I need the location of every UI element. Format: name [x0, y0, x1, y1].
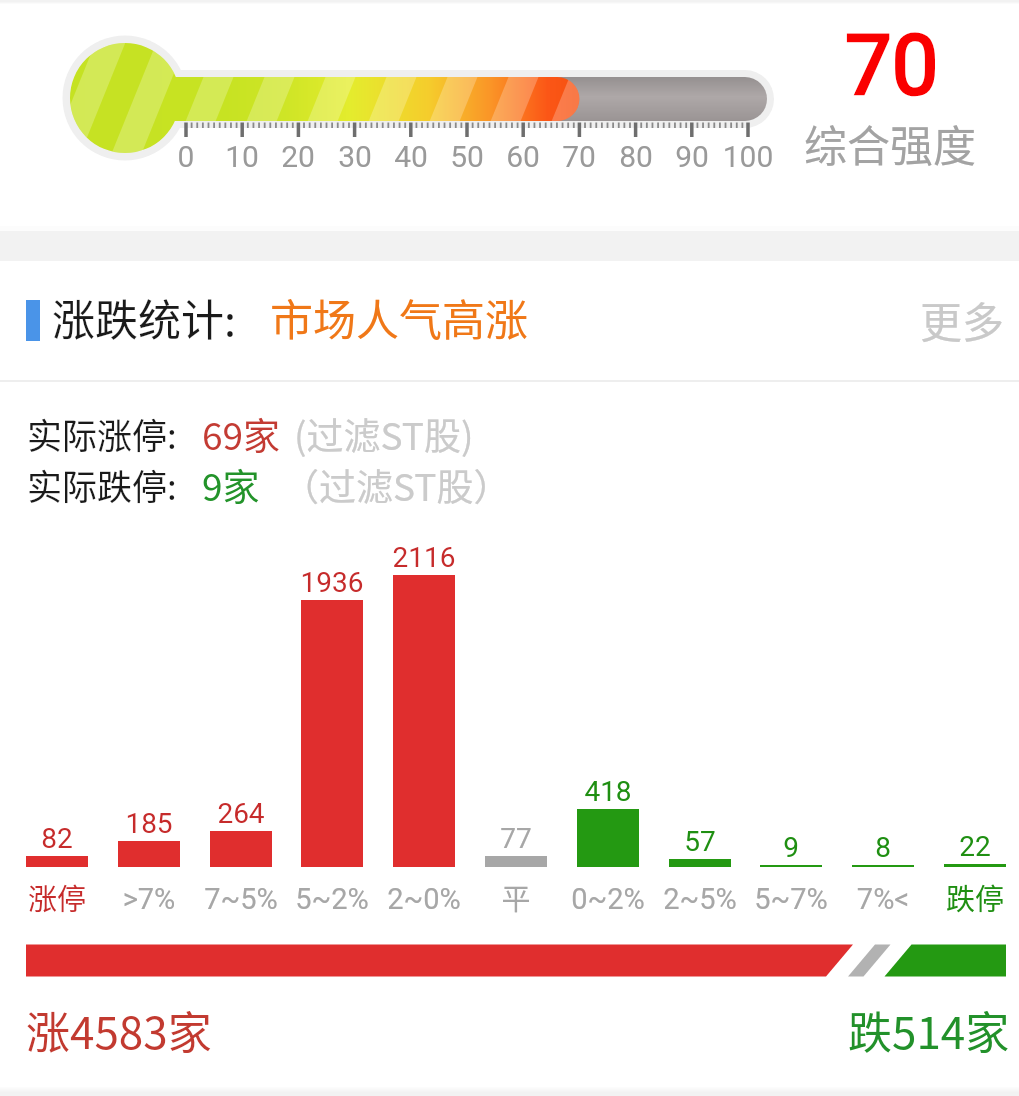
- button[interactable]: 更多: [920, 289, 1005, 350]
- staticText: 0~2%: [557, 882, 659, 916]
- staticText: 实际跌停:: [27, 459, 177, 510]
- staticText: 2~5%: [649, 882, 751, 916]
- staticText: 更多: [920, 289, 1005, 350]
- staticText: 平: [465, 876, 567, 918]
- staticText: 82: [6, 822, 108, 855]
- staticText: 22: [924, 830, 1019, 863]
- staticText: 69家: [202, 407, 281, 461]
- staticText: 市场人气高涨: [270, 286, 528, 348]
- staticText: 5~2%: [281, 882, 383, 916]
- staticText: 90: [642, 139, 742, 174]
- staticText: 7~5%: [190, 882, 292, 916]
- staticText: 40: [361, 139, 461, 174]
- staticText: 跌停: [924, 876, 1019, 918]
- staticText: 8: [832, 831, 934, 864]
- staticText: >7%: [98, 882, 200, 916]
- staticText: 50: [417, 139, 517, 174]
- staticText: 9家: [202, 458, 260, 512]
- staticText: 10: [192, 139, 292, 174]
- staticText: 实际涨停:: [27, 408, 177, 459]
- staticText: 5~7%: [740, 882, 842, 916]
- staticText: 57: [649, 825, 751, 858]
- staticText: 80: [586, 139, 686, 174]
- staticText: 60: [473, 139, 573, 174]
- staticText: 0: [136, 139, 236, 174]
- staticText: 1936: [281, 566, 383, 599]
- staticText: 7%<: [832, 882, 934, 916]
- button[interactable]: 跌514家: [848, 998, 1010, 1062]
- staticText: 77: [465, 822, 567, 855]
- staticText: 418: [557, 775, 659, 808]
- staticText: (过滤ST股): [294, 407, 474, 461]
- staticText: 100: [698, 139, 798, 174]
- button[interactable]: [0, 262, 1019, 381]
- staticText: 涨停: [6, 876, 108, 918]
- staticText: 跌514家: [848, 998, 1010, 1062]
- staticText: 70: [845, 17, 939, 114]
- staticText: 2116: [373, 541, 475, 574]
- staticText: 264: [190, 797, 292, 830]
- button[interactable]: 涨4583家: [26, 998, 212, 1062]
- staticText: 185: [98, 807, 200, 840]
- staticText: 涨跌统计:: [52, 286, 236, 348]
- staticText: 涨4583家: [26, 998, 212, 1062]
- staticText: （过滤ST股）: [282, 458, 511, 512]
- staticText: 30: [305, 139, 405, 174]
- staticText: 2~0%: [373, 882, 475, 916]
- staticText: 70: [529, 139, 629, 174]
- staticText: 20: [248, 139, 348, 174]
- staticText: 9: [740, 831, 842, 864]
- staticText: 综合强度: [804, 112, 976, 174]
